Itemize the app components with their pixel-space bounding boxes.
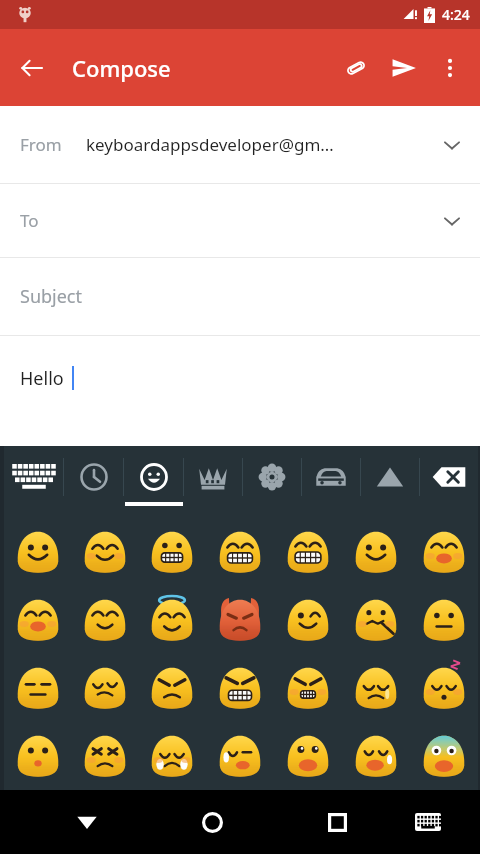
- staticText: 4:24: [442, 5, 470, 24]
- button[interactable]: Emoji CRY: [138, 722, 206, 790]
- staticText: keyboardappsdeveloper@gm…: [86, 133, 424, 156]
- button[interactable]: Emoji WINK: [274, 586, 342, 654]
- staticText: Compose: [72, 53, 171, 83]
- button[interactable]: Attach file: [332, 44, 380, 92]
- button[interactable]: From: [0, 106, 480, 183]
- staticText: From: [20, 133, 62, 156]
- button[interactable]: Emoji GRIN_SQUINT: [274, 518, 342, 586]
- button[interactable]: Emoji ANGEL: [138, 586, 206, 654]
- button[interactable]: Emoji WINK_CLOSED: [71, 586, 138, 654]
- button[interactable]: Home: [184, 794, 240, 850]
- button[interactable]: Smileys: [124, 446, 183, 508]
- button[interactable]: Hello: [0, 336, 480, 420]
- button[interactable]: Symbols: [361, 446, 419, 508]
- button[interactable]: Emoji CONFUSED: [71, 654, 138, 722]
- button[interactable]: Back: [59, 794, 115, 850]
- button[interactable]: Emoji LAUGH: [410, 518, 478, 586]
- button[interactable]: People: [184, 446, 242, 508]
- button[interactable]: Emoji LIE: [342, 586, 410, 654]
- button[interactable]: More options: [428, 44, 472, 92]
- button[interactable]: Keyboard: [4, 446, 63, 508]
- button[interactable]: Emoji LAUGH2: [4, 586, 71, 654]
- button[interactable]: Send: [380, 44, 428, 92]
- button[interactable]: Travel: [302, 446, 360, 508]
- button[interactable]: Emoji RAGE: [206, 654, 274, 722]
- button[interactable]: Emoji SMILE: [4, 518, 71, 586]
- button[interactable]: Emoji GRIN_BIG: [206, 518, 274, 586]
- button[interactable]: Backspace: [420, 446, 478, 508]
- button[interactable]: Emoji SMILE_CLOSED: [71, 518, 138, 586]
- button[interactable]: Emoji WEARY: [206, 722, 274, 790]
- button[interactable]: Emoji FLAT: [4, 654, 71, 722]
- staticText: Subject: [20, 284, 83, 309]
- staticText: Hello: [20, 366, 64, 391]
- button[interactable]: Emoji FRUSTRATED: [71, 722, 138, 790]
- button[interactable]: Emoji SAD: [342, 654, 410, 722]
- button[interactable]: Emoji SHOUT: [274, 722, 342, 790]
- button[interactable]: Subject: [0, 258, 480, 335]
- button[interactable]: Recent apps: [309, 794, 365, 850]
- button[interactable]: Nature: [243, 446, 301, 508]
- button[interactable]: Recent emoji: [64, 446, 123, 508]
- button[interactable]: Emoji SURPRISE: [4, 722, 71, 790]
- button[interactable]: Emoji ANGRY: [138, 654, 206, 722]
- button[interactable]: Emoji ANGUISH: [342, 722, 410, 790]
- button[interactable]: Back: [8, 44, 56, 92]
- button[interactable]: Emoji SMILE2: [342, 518, 410, 586]
- button[interactable]: Emoji SLEEP: [410, 654, 478, 722]
- button[interactable]: Switch keyboard: [400, 794, 456, 850]
- button[interactable]: Emoji NEUTRAL2: [410, 586, 478, 654]
- button[interactable]: To: [0, 184, 480, 257]
- button[interactable]: Emoji POUT: [274, 654, 342, 722]
- staticText: To: [20, 209, 39, 232]
- button[interactable]: Emoji SCREAM: [410, 722, 478, 790]
- button[interactable]: Emoji DEVIL: [206, 586, 274, 654]
- button[interactable]: Emoji GRIN_TEETH: [138, 518, 206, 586]
